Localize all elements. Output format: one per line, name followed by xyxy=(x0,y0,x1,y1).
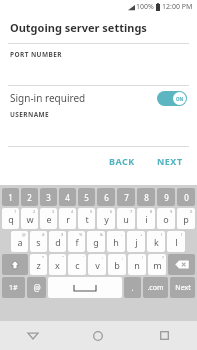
button[interactable]: h xyxy=(107,231,125,252)
button[interactable]: @ xyxy=(27,277,46,298)
staticText: 0 xyxy=(190,209,193,214)
button[interactable]: m xyxy=(148,254,166,275)
staticText: 2 xyxy=(33,209,36,214)
button[interactable]: Sign-in required xyxy=(0,86,197,110)
staticText: * xyxy=(42,255,45,260)
button[interactable]: v xyxy=(88,254,106,275)
staticText: 1 xyxy=(8,192,13,203)
staticText: 7 xyxy=(130,209,133,214)
button[interactable]: 6 xyxy=(97,188,115,206)
button[interactable]: g xyxy=(87,231,105,252)
button[interactable]: Space xyxy=(48,277,122,298)
staticText: Outgoing server settings xyxy=(10,20,147,35)
staticText: 8 xyxy=(150,209,153,214)
button[interactable]: s xyxy=(30,231,47,252)
button[interactable]: Back xyxy=(0,321,65,350)
staticText: 5 xyxy=(90,209,93,214)
button[interactable]: b xyxy=(108,254,126,275)
staticText: 3 xyxy=(46,192,51,203)
staticText: ( xyxy=(161,232,163,237)
staticText: 12:00 PM xyxy=(162,2,193,12)
button[interactable]: d xyxy=(49,231,66,252)
button[interactable]: f xyxy=(68,231,85,252)
staticText: y xyxy=(104,213,109,225)
staticText: # xyxy=(42,232,45,237)
button[interactable]: Sign-in required toggle xyxy=(157,91,187,106)
staticText: 8 xyxy=(144,192,149,203)
button[interactable]: Backspace xyxy=(168,254,195,275)
staticText: f xyxy=(75,236,79,248)
button[interactable]: t xyxy=(78,208,95,229)
button[interactable]: x xyxy=(49,254,66,275)
staticText: ! xyxy=(142,255,144,260)
staticText: h xyxy=(113,236,119,248)
staticText: o xyxy=(163,213,169,225)
button[interactable]: q xyxy=(2,208,19,229)
staticText: + xyxy=(140,232,143,237)
button[interactable]: Next xyxy=(170,277,195,298)
button[interactable]: z xyxy=(30,254,47,275)
button[interactable]: .com xyxy=(143,277,168,298)
button[interactable]: 9 xyxy=(157,188,175,206)
staticText: @ xyxy=(22,232,26,237)
staticText: . xyxy=(131,282,134,293)
button[interactable]: 3 xyxy=(40,188,57,206)
staticText: p xyxy=(183,213,189,225)
button[interactable]: 1 xyxy=(2,188,19,206)
button[interactable]: u xyxy=(117,208,135,229)
staticText: c xyxy=(75,259,80,271)
button[interactable]: r xyxy=(59,208,76,229)
button[interactable]: i xyxy=(137,208,155,229)
button[interactable]: Symbols xyxy=(2,277,25,298)
button[interactable]: 7 xyxy=(117,188,135,206)
staticText: i xyxy=(145,213,148,225)
staticText: - xyxy=(121,232,123,237)
staticText: ' xyxy=(83,255,84,260)
staticText: ) xyxy=(181,232,183,237)
staticText: n xyxy=(134,259,140,271)
staticText: " xyxy=(62,255,64,260)
staticText: .com xyxy=(147,283,164,293)
staticText: v xyxy=(95,259,100,271)
button[interactable]: c xyxy=(68,254,86,275)
button[interactable]: p xyxy=(177,208,195,229)
button[interactable]: Recent apps xyxy=(131,321,197,350)
button[interactable]: k xyxy=(147,231,165,252)
button[interactable]: Home xyxy=(65,321,131,350)
staticText: ? xyxy=(162,255,164,260)
button[interactable]: e xyxy=(40,208,57,229)
button[interactable]: BACK xyxy=(103,151,141,171)
staticText: t xyxy=(85,213,89,225)
button[interactable]: a xyxy=(11,231,28,252)
staticText: 4 xyxy=(71,209,74,214)
button[interactable]: o xyxy=(157,208,175,229)
staticText: ; xyxy=(122,255,124,260)
button[interactable]: l xyxy=(167,231,185,252)
button[interactable]: 5 xyxy=(78,188,95,206)
staticText: 1 xyxy=(14,209,17,214)
staticText: s xyxy=(36,236,41,248)
button[interactable]: NEXT xyxy=(151,151,189,171)
staticText: z xyxy=(36,259,41,271)
staticText: NEXT xyxy=(157,155,183,167)
button[interactable]: 4 xyxy=(59,188,76,206)
button[interactable]: Shift xyxy=(2,254,28,275)
staticText: $ xyxy=(61,232,64,237)
staticText: 6 xyxy=(104,192,109,203)
button[interactable]: 2 xyxy=(21,188,38,206)
staticText: q xyxy=(8,213,14,225)
button[interactable]: n xyxy=(128,254,146,275)
button[interactable]: . xyxy=(124,277,141,298)
button[interactable]: y xyxy=(97,208,115,229)
staticText: l xyxy=(175,236,178,248)
staticText: a xyxy=(17,236,23,248)
staticText: ON xyxy=(176,96,184,102)
staticText: % xyxy=(79,232,83,237)
button[interactable]: j xyxy=(127,231,145,252)
staticText: 9 xyxy=(170,209,173,214)
button[interactable]: 8 xyxy=(137,188,155,206)
button[interactable]: w xyxy=(21,208,38,229)
staticText: 3 xyxy=(52,209,55,214)
staticText: j xyxy=(135,236,138,248)
button[interactable]: 0 xyxy=(177,188,195,206)
